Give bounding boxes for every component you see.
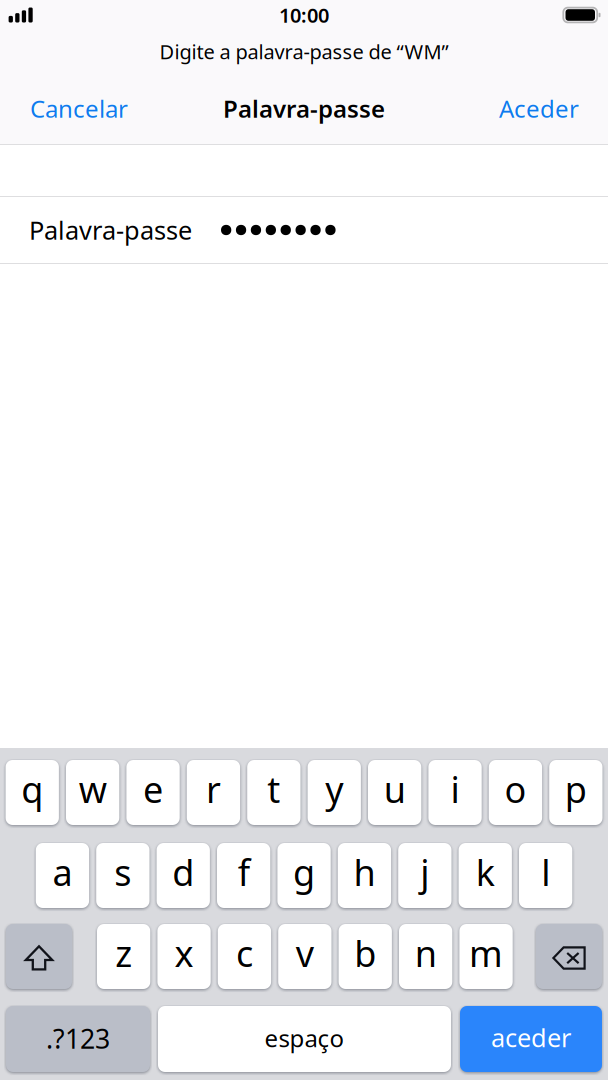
button[interactable]: u	[368, 760, 421, 825]
staticText: aceder	[491, 1021, 571, 1054]
button[interactable]: b	[339, 924, 392, 989]
button[interactable]: v	[278, 924, 331, 989]
staticText: espaço	[264, 1022, 344, 1054]
staticText: q	[21, 765, 43, 813]
button[interactable]: e	[126, 760, 180, 825]
staticText: i	[450, 765, 459, 813]
staticText: s	[114, 848, 131, 896]
staticText: d	[172, 848, 194, 896]
button[interactable]: y	[308, 760, 361, 825]
button[interactable]: w	[66, 760, 119, 825]
staticText: z	[115, 929, 132, 977]
button[interactable]: s	[96, 843, 149, 908]
staticText: y	[325, 765, 343, 813]
staticText: l	[541, 848, 550, 896]
button[interactable]: f	[217, 843, 270, 908]
staticText: w	[79, 765, 107, 813]
button[interactable]: p	[549, 760, 602, 825]
staticText: Digite a palavra-passe de “WM”	[159, 38, 448, 65]
staticText: j	[420, 848, 429, 896]
staticText: k	[476, 848, 495, 896]
button[interactable]: h	[338, 843, 391, 908]
staticText: p	[565, 765, 587, 813]
button[interactable]: j	[398, 843, 451, 908]
staticText: 10:00	[279, 2, 329, 28]
button[interactable]: g	[277, 843, 331, 908]
staticText: Aceder	[499, 93, 579, 124]
staticText: Palavra-passe	[223, 93, 385, 124]
button[interactable]: a	[36, 843, 89, 908]
button[interactable]: d	[157, 843, 210, 908]
button[interactable]: t	[247, 760, 300, 825]
button[interactable]: c	[218, 924, 271, 989]
staticText: .?123	[46, 1021, 110, 1056]
button[interactable]: o	[489, 760, 542, 825]
button[interactable]: x	[157, 924, 211, 989]
button[interactable]: i	[428, 760, 482, 825]
button[interactable]: q	[6, 760, 59, 825]
staticText: e	[143, 765, 163, 813]
staticText: m	[469, 929, 503, 977]
staticText: Cancelar	[30, 93, 128, 124]
button[interactable]: espaço	[158, 1006, 451, 1072]
staticText: u	[384, 765, 406, 813]
button[interactable]: n	[399, 924, 452, 989]
staticText: h	[353, 848, 375, 896]
button[interactable]: .?123	[6, 1006, 150, 1072]
staticText: x	[175, 929, 194, 977]
button[interactable]: Palavra-passe	[0, 197, 608, 263]
staticText: Palavra-passe	[29, 213, 192, 247]
staticText: b	[354, 929, 376, 977]
button[interactable]: aceder	[460, 1006, 602, 1072]
button[interactable]: m	[459, 924, 513, 989]
staticText: v	[296, 929, 314, 977]
staticText: c	[236, 929, 253, 977]
button[interactable]: Aceder	[485, 82, 608, 134]
staticText: g	[293, 848, 315, 896]
button[interactable]: Cancelar	[0, 82, 142, 134]
button[interactable]: r	[187, 760, 240, 825]
staticText: t	[267, 765, 280, 813]
staticText: r	[206, 765, 221, 813]
button[interactable]: Apagar	[536, 924, 602, 989]
staticText: o	[504, 765, 526, 813]
button[interactable]: l	[519, 843, 572, 908]
button[interactable]: Maiúsculas	[6, 924, 72, 989]
staticText: f	[238, 848, 250, 896]
staticText: a	[52, 848, 72, 896]
button[interactable]: k	[459, 843, 512, 908]
staticText: n	[415, 929, 437, 977]
button[interactable]: z	[97, 924, 150, 989]
